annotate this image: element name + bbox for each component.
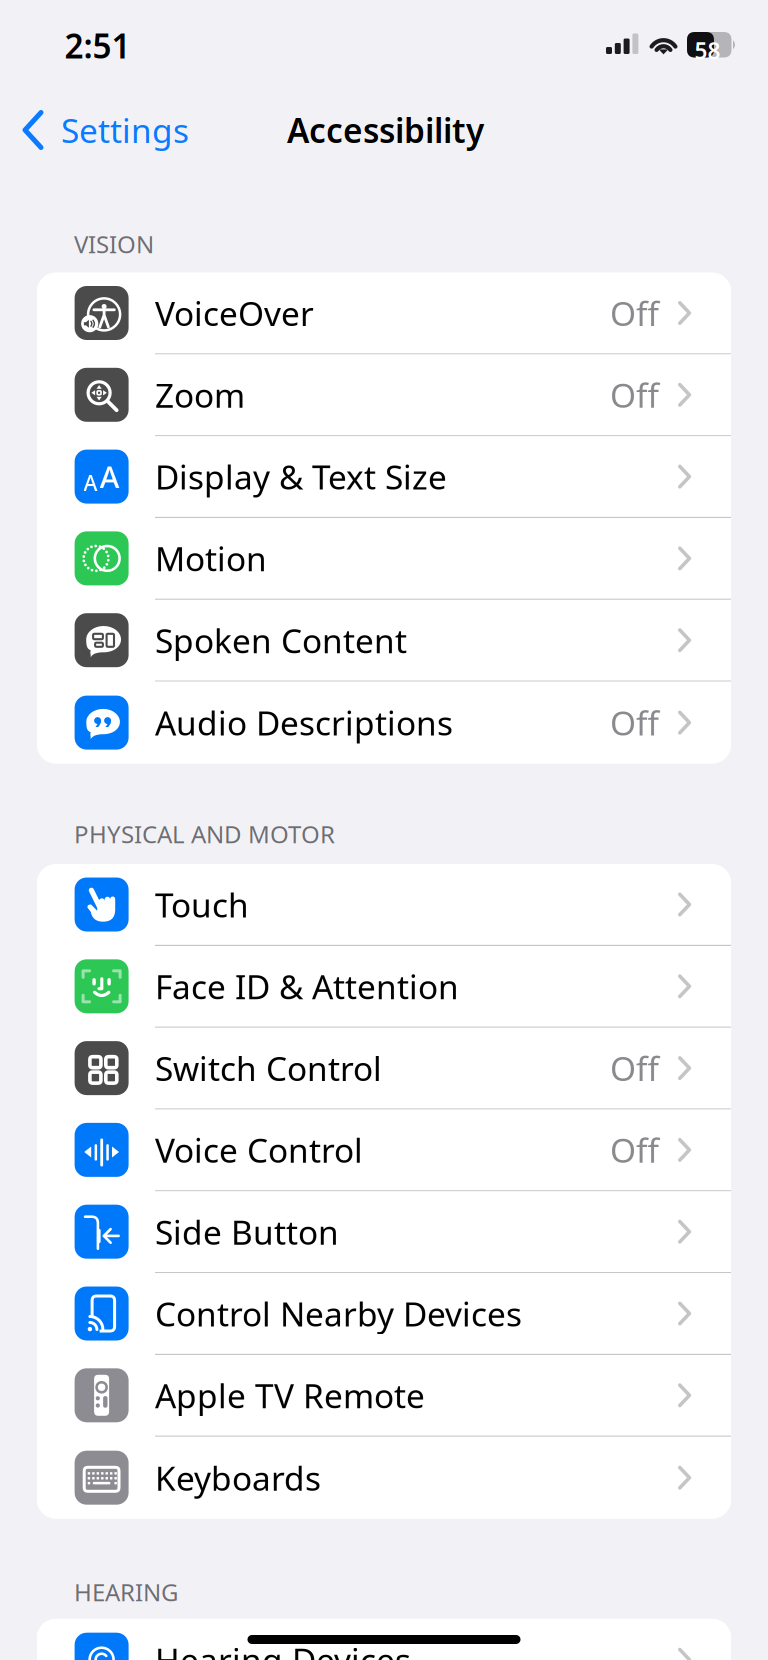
staticText: HEARING: [74, 1576, 178, 1608]
button[interactable]: Settings: [22, 106, 189, 154]
staticText: Off: [610, 1046, 659, 1090]
button[interactable]: Apple TV Remote: [37, 1355, 731, 1437]
button[interactable]: Switch Control: [37, 1028, 731, 1110]
button[interactable]: Spoken Content: [37, 600, 731, 682]
staticText: Off: [610, 1128, 659, 1172]
staticText: Off: [610, 373, 659, 417]
staticText: Audio Descriptions: [155, 700, 453, 745]
staticText: Hearing Devices: [155, 1638, 411, 1660]
staticText: Touch: [155, 882, 249, 927]
button[interactable]: Motion: [37, 518, 731, 600]
button[interactable]: Keyboards: [37, 1437, 731, 1519]
staticText: A: [100, 456, 120, 497]
staticText: Off: [610, 291, 659, 335]
button[interactable]: Side Button: [37, 1191, 731, 1273]
staticText: VISION: [74, 228, 154, 260]
staticText: Off: [610, 700, 659, 745]
staticText: Display & Text Size: [155, 454, 447, 499]
staticText: Zoom: [155, 373, 245, 417]
button[interactable]: Touch: [37, 864, 731, 946]
button[interactable]: Control Nearby Devices: [37, 1273, 731, 1355]
staticText: A: [84, 469, 98, 497]
staticText: Control Nearby Devices: [155, 1291, 522, 1336]
staticText: Motion: [155, 536, 267, 581]
button[interactable]: Hearing Devices: [37, 1619, 731, 1660]
button[interactable]: Audio Descriptions: [37, 682, 731, 763]
staticText: Voice Control: [155, 1128, 363, 1172]
staticText: Apple TV Remote: [155, 1373, 425, 1417]
staticText: 58: [694, 35, 720, 66]
button[interactable]: Face ID & Attention: [37, 946, 731, 1028]
button[interactable]: VoiceOver: [37, 273, 731, 354]
button[interactable]: Voice Control: [37, 1110, 731, 1191]
staticText: Keyboards: [155, 1456, 321, 1500]
staticText: PHYSICAL AND MOTOR: [74, 818, 335, 850]
staticText: Spoken Content: [155, 618, 407, 662]
staticText: Settings: [61, 108, 189, 152]
button[interactable]: A: [37, 436, 731, 518]
staticText: Accessibility: [287, 108, 484, 152]
staticText: Side Button: [155, 1210, 339, 1254]
staticText: 2:51: [64, 23, 130, 68]
staticText: VoiceOver: [155, 291, 314, 335]
staticText: Face ID & Attention: [155, 964, 459, 1008]
button[interactable]: Zoom: [37, 354, 731, 436]
staticText: Switch Control: [155, 1046, 382, 1090]
